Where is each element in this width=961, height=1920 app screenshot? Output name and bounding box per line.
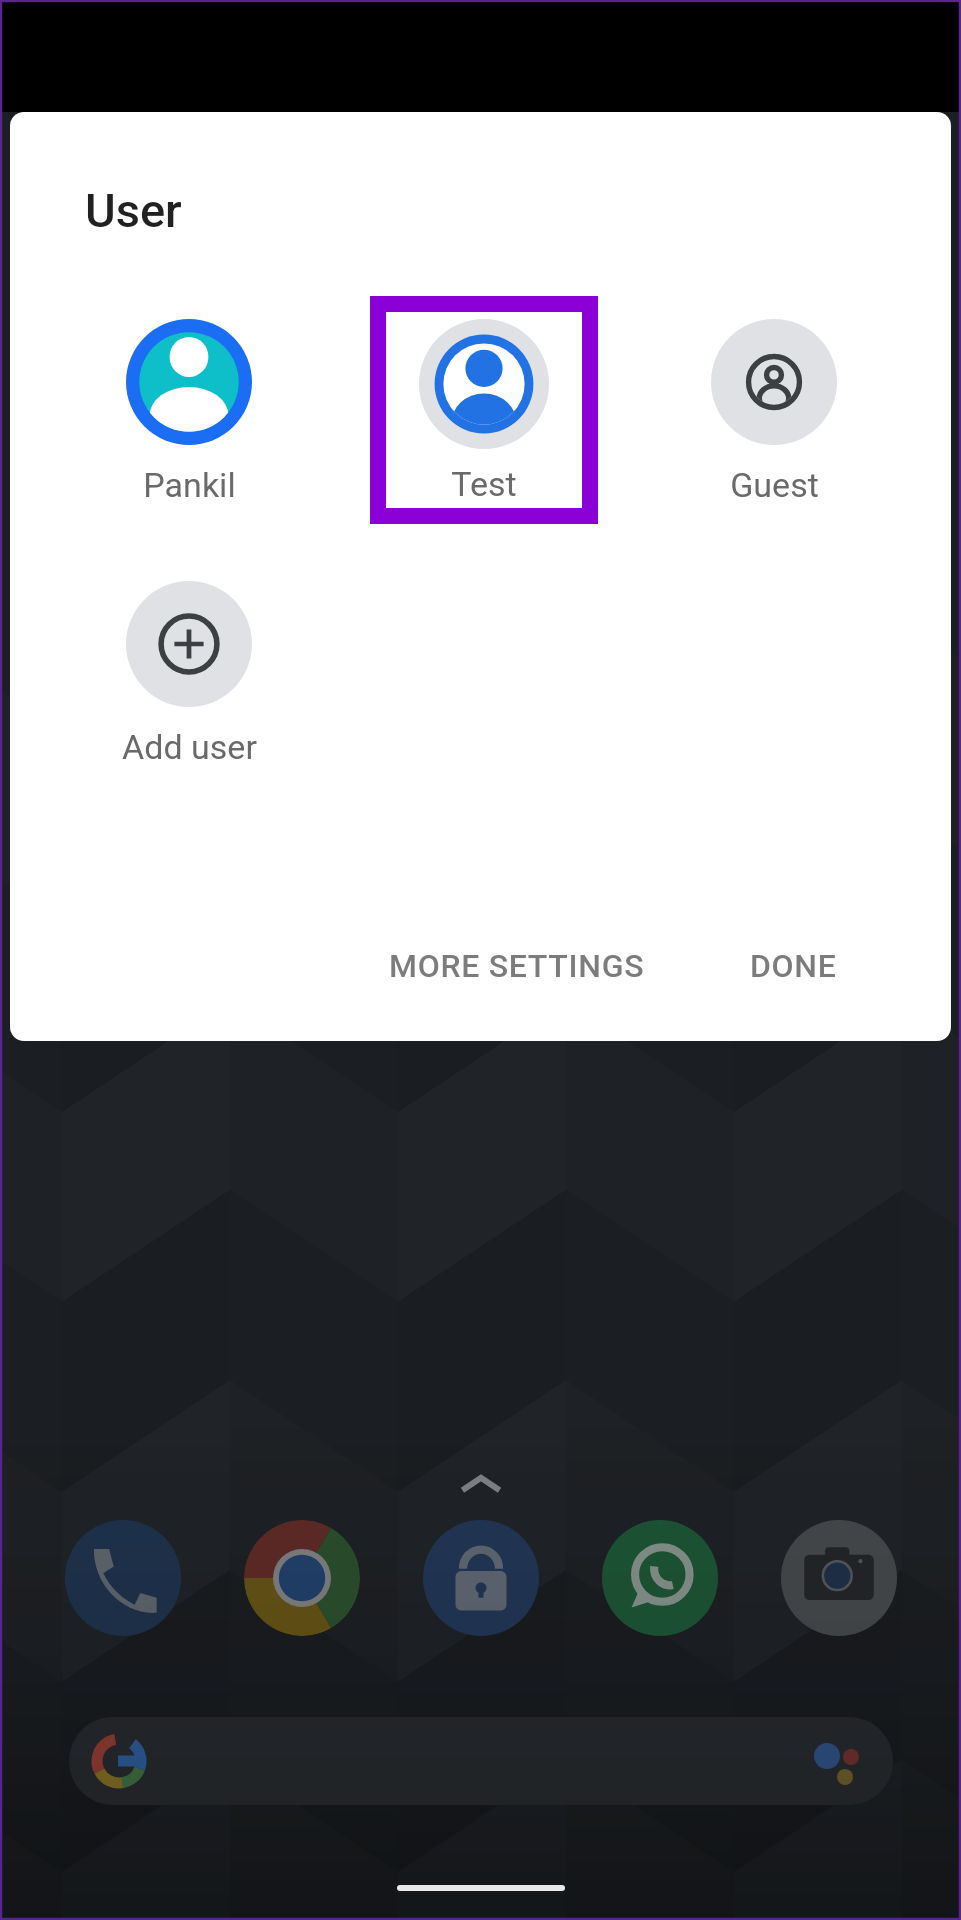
button[interactable]: MORE SETTINGS [367, 921, 667, 1011]
staticText: Guest [730, 465, 819, 505]
staticText: MORE SETTINGS [389, 947, 645, 985]
button[interactable]: Guest [660, 296, 888, 524]
button[interactable]: Camera [781, 1520, 897, 1636]
button[interactable]: DONE [728, 921, 859, 1011]
staticText: DONE [750, 947, 837, 985]
button[interactable]: Test [370, 296, 598, 524]
button[interactable]: WhatsApp [602, 1520, 718, 1636]
button[interactable]: Chrome [244, 1520, 360, 1636]
staticText: User [85, 183, 182, 238]
button[interactable]: Search [69, 1717, 893, 1805]
button[interactable]: Phone [65, 1520, 181, 1636]
staticText: Test [451, 464, 517, 504]
button[interactable]: Add user [75, 558, 303, 786]
button[interactable]: App drawer [452, 1470, 510, 1496]
staticText: Add user [122, 727, 257, 767]
staticText: Pankil [143, 465, 236, 505]
button[interactable]: Settings [423, 1520, 539, 1636]
button[interactable]: Pankil [75, 296, 303, 524]
